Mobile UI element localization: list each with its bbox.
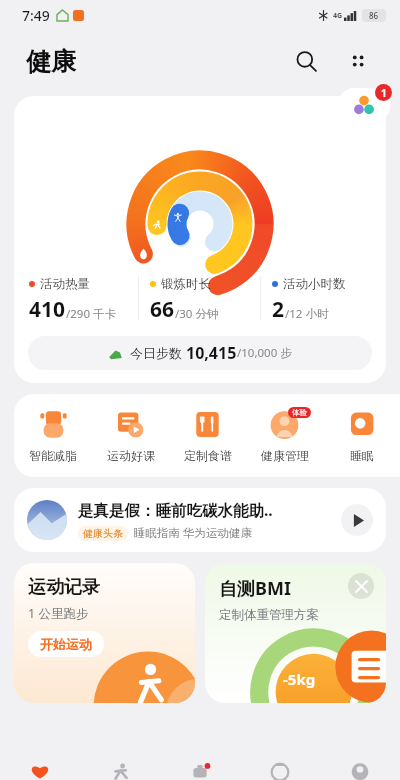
staticText: 睡眠指南 华为运动健康: [134, 525, 252, 541]
staticText: 是真是假：睡前吃碳水能助..: [78, 499, 273, 520]
staticText: 活动小时数: [283, 276, 346, 292]
staticText: 智能减脂: [29, 448, 77, 463]
button[interactable]: More options: [338, 41, 378, 81]
staticText: 健康头条: [83, 527, 123, 540]
staticText: 7:49: [22, 6, 50, 25]
button[interactable]: 智能减脂: [14, 408, 92, 463]
button[interactable]: Exercise: [80, 758, 160, 780]
staticText: 2: [272, 295, 285, 324]
button[interactable]: Search: [286, 41, 326, 81]
staticText: 定制食谱: [184, 448, 232, 463]
button[interactable]: 活动热量: [14, 96, 386, 383]
button[interactable]: 睡眠: [323, 408, 400, 463]
button[interactable]: Devices: [160, 758, 240, 780]
button[interactable]: Close: [205, 563, 386, 703]
staticText: 锻炼时长: [161, 276, 211, 292]
staticText: 健康: [26, 46, 76, 77]
staticText: 自测BMI: [219, 576, 291, 601]
button[interactable]: Close: [348, 573, 374, 599]
button[interactable]: Health: [0, 758, 80, 780]
staticText: 1 公里跑步: [28, 605, 89, 622]
staticText: 健康管理: [261, 448, 309, 463]
button[interactable]: 今日步数: [28, 336, 372, 370]
staticText: /10,000 步: [237, 345, 292, 361]
staticText: 开始运动: [40, 636, 92, 652]
staticText: 睡眠: [350, 448, 374, 463]
staticText: 86: [369, 10, 379, 21]
staticText: 410: [29, 295, 66, 324]
button[interactable]: Discover: [240, 758, 320, 780]
button[interactable]: Notifications: [338, 88, 390, 122]
button[interactable]: 定制食谱: [169, 408, 246, 463]
staticText: 1: [381, 86, 387, 100]
staticText: 66: [150, 295, 175, 324]
staticText: 今日步数: [130, 344, 186, 362]
button[interactable]: 运动好课: [92, 408, 169, 463]
staticText: /30 分钟: [175, 306, 219, 322]
staticText: 运动记录: [28, 576, 100, 599]
staticText: 定制体重管理方案: [219, 607, 319, 623]
button[interactable]: Me: [320, 758, 400, 780]
staticText: 10,415: [186, 342, 237, 364]
staticText: 活动热量: [40, 276, 90, 292]
staticText: 运动好课: [107, 448, 155, 463]
button[interactable]: 运动记录: [14, 563, 195, 703]
staticText: 体验: [292, 408, 307, 417]
button[interactable]: 开始运动: [28, 631, 104, 657]
button[interactable]: Play: [341, 504, 373, 536]
staticText: /12 小时: [285, 306, 329, 322]
button[interactable]: 是真是假：睡前吃碳水能助..: [14, 488, 386, 552]
staticText: 4G: [333, 11, 343, 21]
button[interactable]: 体验: [246, 408, 323, 463]
staticText: -5kg: [283, 669, 316, 689]
staticText: /290 千卡: [66, 306, 117, 322]
